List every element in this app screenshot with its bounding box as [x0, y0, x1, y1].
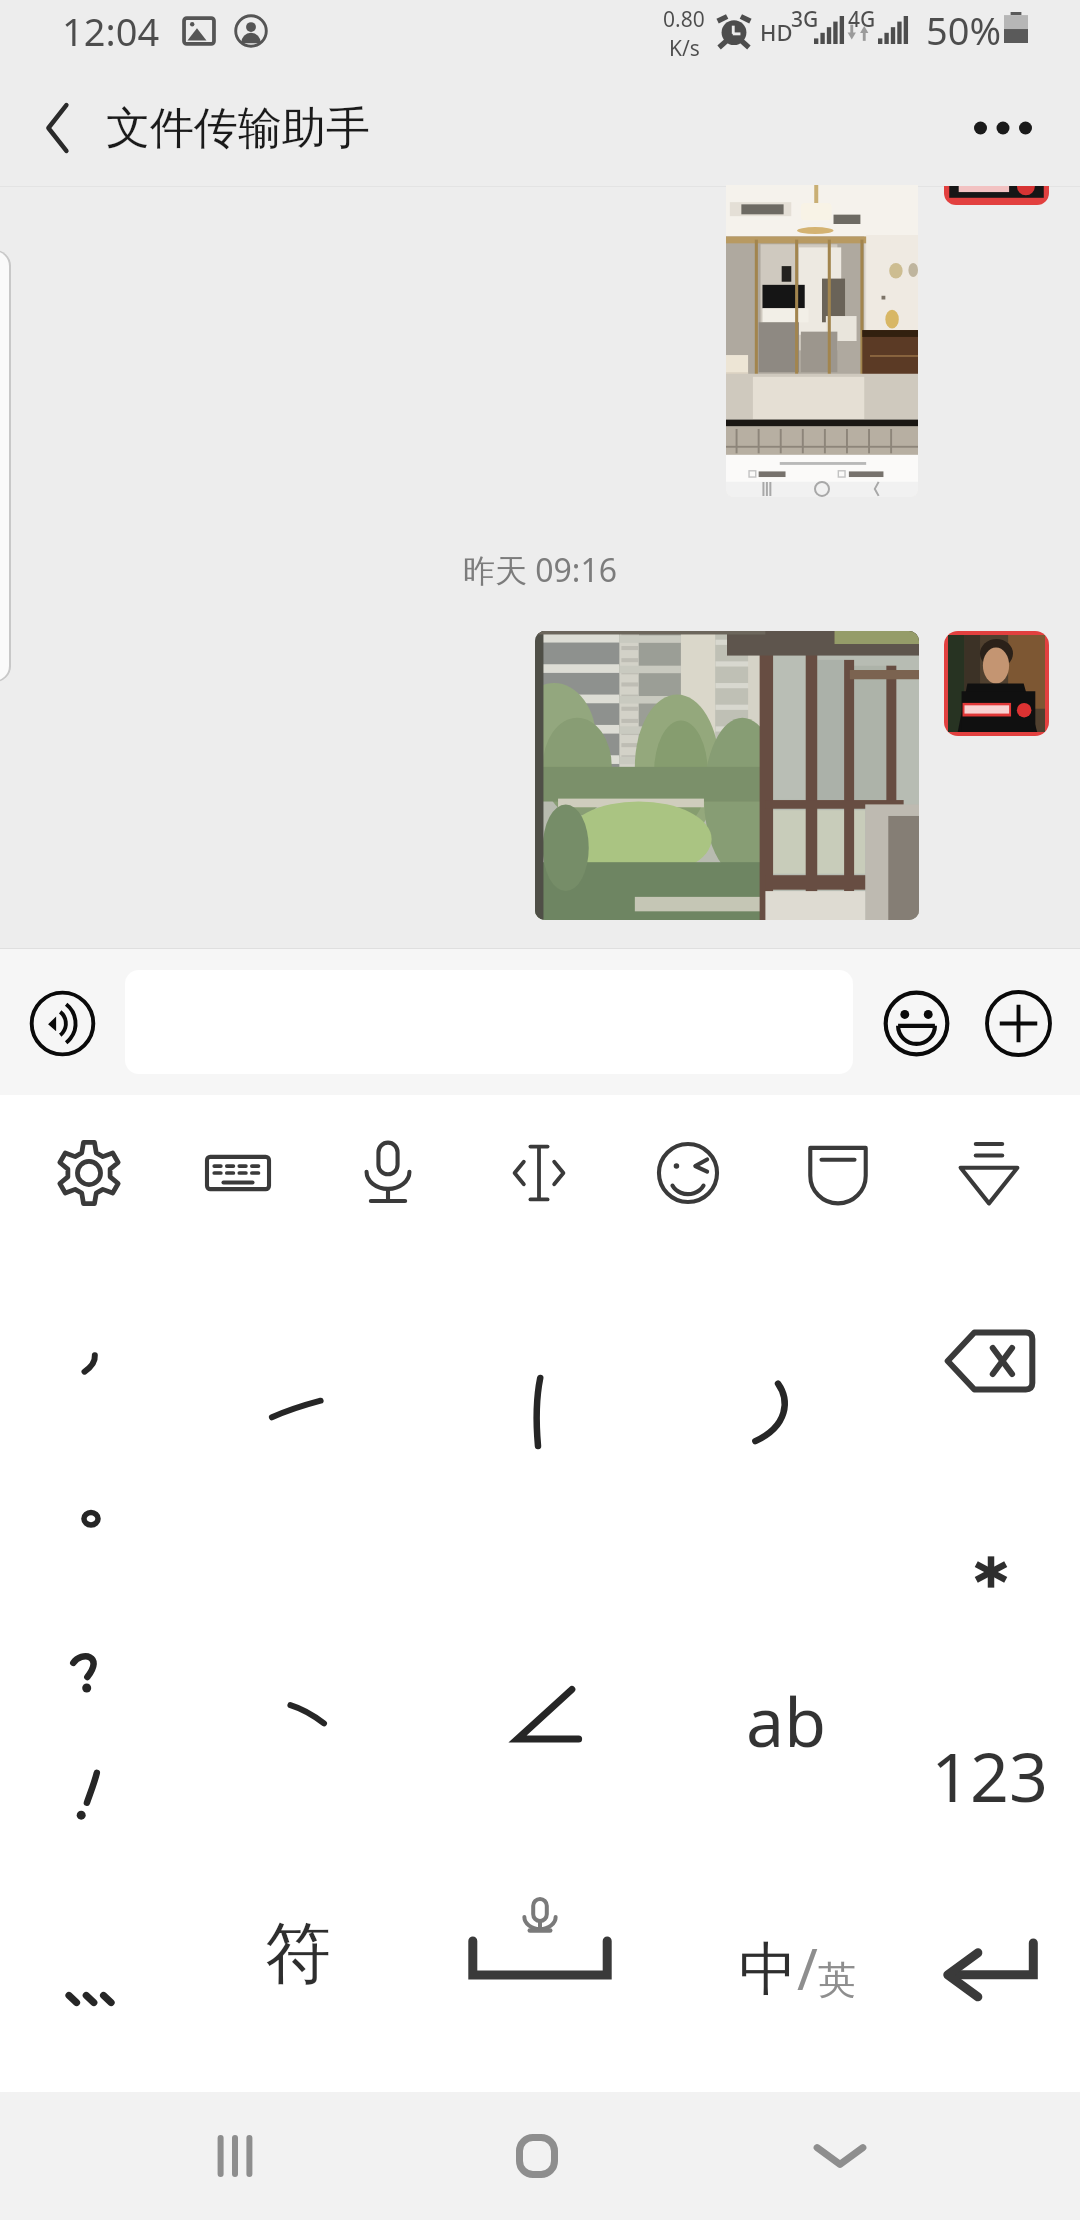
button[interactable]: ，	[79, 1351, 101, 1375]
button[interactable]: Avatar	[944, 186, 1049, 205]
button[interactable]: Symbols	[974, 1556, 1008, 1588]
button[interactable]: 乙	[512, 1687, 580, 1749]
button[interactable]: Back	[10, 80, 106, 176]
button[interactable]: Move cursor	[484, 1118, 594, 1228]
button[interactable]: Hide keyboard	[934, 1118, 1044, 1228]
button[interactable]: ？	[72, 1651, 104, 1693]
button[interactable]: Switch Chinese English	[702, 1918, 892, 2006]
staticText: ab	[746, 1674, 826, 1767]
button[interactable]: 丶	[288, 1701, 328, 1727]
button[interactable]: 一	[268, 1395, 324, 1421]
button[interactable]: ！	[76, 1771, 102, 1819]
button[interactable]: 丿	[752, 1381, 794, 1445]
staticText: 0.80	[663, 5, 705, 34]
staticText: 文件传输助手	[106, 101, 370, 156]
button[interactable]	[0, 250, 11, 682]
button[interactable]: Avatar	[944, 631, 1049, 736]
button[interactable]: More options	[948, 73, 1058, 183]
button[interactable]: Emoji	[868, 975, 964, 1071]
staticText: 英	[818, 1956, 856, 2004]
button[interactable]: Voice input	[333, 1118, 443, 1228]
staticText: 符	[265, 1912, 331, 1995]
button[interactable]: 丨	[524, 1375, 552, 1449]
staticText: 123	[931, 1729, 1048, 1822]
button[interactable]: 文件传输助手	[100, 70, 376, 186]
staticText: 3G	[791, 5, 819, 34]
button[interactable]: Numbers	[919, 1725, 1059, 1825]
staticText: 50%	[926, 4, 1002, 56]
staticText: 4G	[848, 5, 876, 34]
button[interactable]: Enter	[944, 1940, 1038, 1998]
staticText: 昨天 09:16	[0, 548, 1080, 592]
button[interactable]: Space	[460, 1895, 620, 1995]
button[interactable]: 。	[80, 1509, 102, 1529]
button[interactable]	[535, 631, 919, 920]
button[interactable]: Hide keyboard	[765, 2096, 915, 2216]
staticText: 12:04	[62, 5, 160, 57]
button[interactable]: More	[67, 1993, 115, 2005]
button[interactable]: Home	[462, 2096, 612, 2216]
button[interactable]: Recents	[160, 2096, 310, 2216]
staticText: K/s	[669, 34, 700, 63]
button[interactable]: Letters	[716, 1670, 856, 1770]
staticText: HD	[760, 17, 793, 47]
button[interactable]: Symbols	[228, 1903, 368, 2003]
staticText: 中	[739, 1933, 797, 2006]
staticText: /	[797, 1930, 818, 2006]
button[interactable]: Emoji	[633, 1118, 743, 1228]
button[interactable]	[726, 185, 918, 497]
button[interactable]: More	[970, 975, 1066, 1071]
button[interactable]: Switch keyboard	[183, 1118, 293, 1228]
button[interactable]: Backspace	[944, 1330, 1036, 1392]
button[interactable]: Voice input	[14, 975, 110, 1071]
button[interactable]: Settings	[34, 1118, 144, 1228]
button[interactable]: Clipboard	[783, 1118, 893, 1228]
